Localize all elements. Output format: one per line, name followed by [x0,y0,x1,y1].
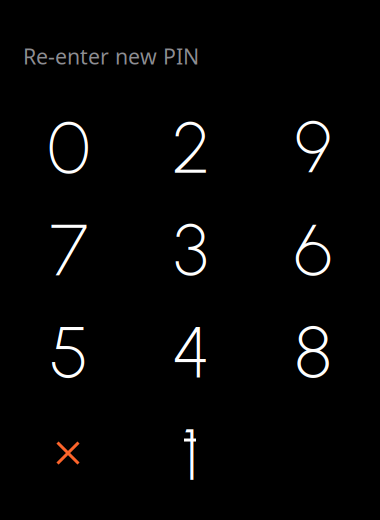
button[interactable]: 6 [252,198,374,301]
button[interactable]: 7 [8,198,130,301]
staticText: 5 [49,309,88,395]
button[interactable]: Clear [8,403,130,505]
button[interactable]: 0 [8,96,130,198]
staticText: 4 [172,309,210,395]
staticText: 2 [172,104,210,191]
button[interactable]: 1 [130,403,252,505]
staticText: 0 [47,104,90,191]
button[interactable]: 4 [130,301,252,403]
button[interactable]: 2 [130,96,252,198]
staticText: 8 [294,309,331,395]
staticText: 3 [173,206,208,293]
staticText: 7 [50,206,88,293]
staticText: 9 [294,104,331,191]
button[interactable]: 8 [252,301,374,403]
staticText: 1 [182,411,199,497]
button[interactable]: 5 [8,301,130,403]
staticText: 6 [294,206,332,293]
button[interactable]: 9 [252,96,374,198]
button[interactable]: 3 [130,198,252,301]
staticText: Re-enter new PIN [23,42,199,70]
